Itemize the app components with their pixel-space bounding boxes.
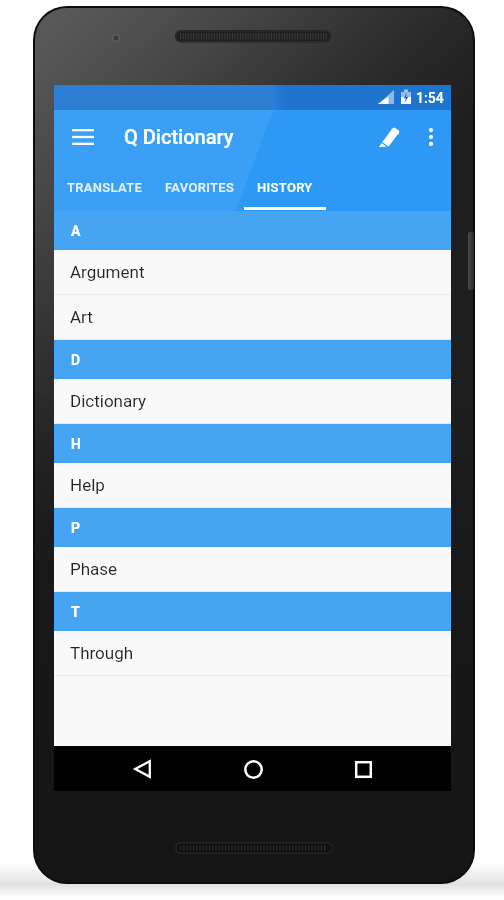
staticText: Help: [70, 475, 105, 495]
button[interactable]: Open navigation drawer: [61, 115, 105, 159]
staticText: FAVORITES: [165, 180, 235, 195]
button[interactable]: Help: [54, 463, 451, 507]
button[interactable]: Home: [231, 747, 275, 791]
staticText: 1:54: [416, 90, 444, 106]
button[interactable]: TRANSLATE: [56, 163, 154, 211]
staticText: D: [71, 352, 81, 368]
button[interactable]: FAVORITES: [154, 163, 246, 211]
staticText: H: [71, 436, 81, 452]
staticText: Phase: [70, 559, 118, 579]
button[interactable]: Art: [54, 295, 451, 339]
staticText: P: [71, 520, 81, 536]
staticText: TRANSLATE: [67, 180, 143, 195]
button[interactable]: Phase: [54, 547, 451, 591]
button[interactable]: Dictionary: [54, 379, 451, 423]
staticText: Art: [70, 307, 93, 327]
staticText: HISTORY: [257, 180, 313, 195]
staticText: T: [71, 604, 80, 620]
staticText: Through: [70, 643, 134, 663]
button[interactable]: Through: [54, 631, 451, 675]
button[interactable]: HISTORY: [246, 163, 324, 211]
staticText: Q Dictionary: [124, 125, 234, 148]
staticText: Argument: [70, 262, 145, 282]
button[interactable]: Back: [120, 747, 164, 791]
button[interactable]: Edit: [367, 115, 411, 159]
staticText: Dictionary: [70, 391, 147, 411]
button[interactable]: More options: [411, 117, 451, 157]
button[interactable]: Argument: [54, 250, 451, 294]
button[interactable]: Recent apps: [341, 747, 385, 791]
staticText: A: [71, 223, 81, 239]
